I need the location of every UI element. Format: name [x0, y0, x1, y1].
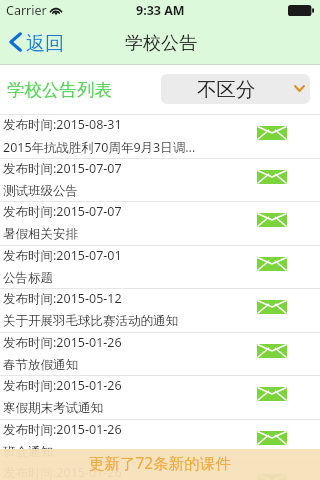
other: Message [257, 431, 287, 445]
staticText: 学校公告 [125, 32, 197, 55]
other: Message [257, 474, 287, 480]
staticText: 返回 [26, 32, 64, 56]
other: Message [257, 126, 287, 140]
button[interactable]: 发布时间:2015-01-26 [0, 419, 320, 463]
staticText: 春节放假通知 [3, 357, 253, 373]
staticText: 9:33 AM [136, 2, 185, 19]
staticText: 公告标题 [3, 270, 253, 286]
other: Expand [294, 85, 305, 92]
other: Message [257, 170, 287, 184]
other: Message [257, 257, 287, 271]
staticText: 发布时间:2015-05-12 [3, 290, 122, 307]
other: Message [257, 213, 287, 227]
button[interactable]: 发布时间:2015-07-07 [0, 158, 320, 202]
staticText: 2015年抗战胜利70周年9月3日调... [3, 139, 253, 156]
staticText: 发布时间:2015-01-26 [3, 421, 122, 438]
other: Message [257, 387, 287, 401]
staticText: 发布时间:2015-07-07 [3, 160, 122, 177]
button[interactable]: 发布时间:2015-07-07 [0, 201, 320, 245]
staticText: 班会通知 [3, 444, 253, 460]
staticText: 不区分 [197, 77, 256, 102]
staticText: 发布时间:2015-01-26 [3, 377, 122, 394]
button[interactable]: 发布时间:2015-07-01 [0, 245, 320, 289]
button[interactable]: 发布时间:2015-01-26 [0, 332, 320, 376]
staticText: 测试班级公告 [3, 183, 253, 199]
other: Message [257, 344, 287, 358]
button[interactable]: 发布时间:2015-01-26 [0, 462, 320, 480]
staticText: 发布时间:2015-08-31 [3, 116, 122, 133]
staticText: Carrier [6, 2, 47, 19]
staticText: 发布时间:2015-07-07 [3, 203, 122, 220]
other: Message [257, 300, 287, 314]
staticText: 暑假相关安排 [3, 226, 253, 242]
button[interactable]: 返回 [0, 20, 70, 64]
other: Wi-Fi [49, 5, 63, 15]
button[interactable]: 不区分 [161, 74, 310, 104]
staticText: 学校公告列表 [7, 79, 112, 101]
button[interactable]: 发布时间:2015-08-31 [0, 114, 320, 158]
staticText: 更新了72条新的课件 [89, 452, 231, 473]
staticText: 关于开展羽毛球比赛活动的通知 [3, 313, 253, 329]
staticText: 发布时间:2015-07-01 [3, 247, 122, 264]
button[interactable]: 发布时间:2015-05-12 [0, 288, 320, 332]
other: Battery [288, 5, 314, 16]
staticText: 发布时间:2015-01-26 [3, 464, 122, 480]
button[interactable]: 发布时间:2015-01-26 [0, 375, 320, 419]
staticText: 发布时间:2015-01-26 [3, 334, 122, 351]
staticText: 寒假期末考试通知 [3, 400, 253, 416]
